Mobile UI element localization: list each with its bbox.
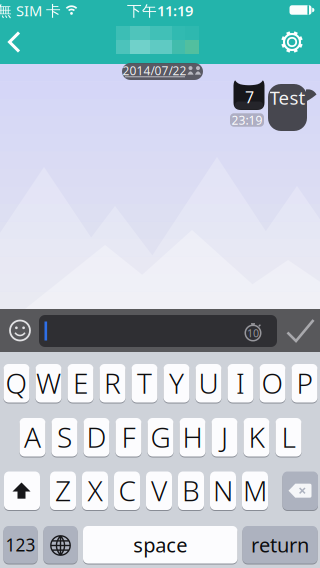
button[interactable]: K	[0, 0, 320, 568]
button[interactable]: O	[0, 0, 320, 568]
button[interactable]: B	[0, 0, 320, 568]
button[interactable]: I	[0, 0, 320, 568]
button[interactable]	[0, 0, 320, 568]
button[interactable]: Z	[0, 0, 320, 568]
staticText: W	[36, 364, 61, 402]
button[interactable]: Q	[0, 0, 320, 568]
button[interactable]: S	[0, 0, 320, 568]
button[interactable]: E	[0, 0, 320, 568]
staticText: O	[261, 364, 283, 402]
staticText: 2014/07/22	[122, 62, 186, 78]
button[interactable]: J	[0, 0, 320, 568]
staticText: Y	[169, 364, 184, 402]
button[interactable]: G	[0, 0, 320, 568]
staticText: Z	[55, 472, 71, 509]
button[interactable]: P	[0, 0, 320, 568]
staticText: R	[104, 364, 121, 402]
button[interactable]: W	[0, 0, 320, 568]
button[interactable]: C	[0, 0, 320, 568]
button[interactable]: A	[0, 0, 320, 568]
staticText: X	[87, 472, 102, 509]
staticText: I	[236, 364, 245, 402]
staticText: H	[182, 418, 202, 456]
staticText: L	[281, 418, 295, 456]
staticText: 23:19	[231, 112, 262, 128]
button[interactable]: 123	[0, 0, 320, 568]
staticText: A	[24, 418, 41, 456]
button[interactable]: return	[0, 0, 320, 568]
button[interactable]	[0, 0, 320, 568]
staticText: 無 SIM 卡	[0, 1, 61, 20]
button[interactable]	[279, 29, 305, 55]
button[interactable]: H	[0, 0, 320, 568]
staticText: N	[213, 472, 233, 509]
staticText: D	[86, 418, 106, 456]
button[interactable]: T	[0, 0, 320, 568]
button[interactable]	[0, 0, 320, 568]
staticText: E	[73, 364, 88, 402]
staticText: F	[121, 418, 135, 456]
button[interactable]: U	[0, 0, 320, 568]
button[interactable]: N	[0, 0, 320, 568]
staticText: U	[198, 364, 218, 402]
staticText: return	[251, 531, 309, 558]
staticText: K	[248, 418, 264, 456]
staticText: G	[150, 418, 170, 456]
staticText: 10	[247, 326, 259, 340]
button[interactable]: Test	[268, 84, 307, 131]
staticText: P	[296, 364, 312, 402]
staticText: Q	[5, 364, 27, 402]
staticText: 下午11:19	[127, 1, 193, 20]
button[interactable]	[6, 316, 34, 344]
button[interactable]: L	[0, 0, 320, 568]
button[interactable]: R	[0, 0, 320, 568]
button[interactable]: D	[0, 0, 320, 568]
staticText: S	[57, 418, 72, 456]
staticText: J	[221, 418, 228, 456]
staticText: T	[137, 364, 152, 402]
button[interactable]: Y	[0, 0, 320, 568]
button[interactable]: 10	[39, 315, 277, 347]
staticText: 7	[245, 86, 254, 108]
button[interactable]: X	[0, 0, 320, 568]
button[interactable]: V	[0, 0, 320, 568]
button[interactable]: space	[0, 0, 320, 568]
staticText: B	[182, 472, 200, 509]
staticText: 123	[5, 533, 35, 556]
staticText: Test	[269, 85, 305, 110]
button[interactable]	[286, 318, 315, 342]
button[interactable]: M	[0, 0, 320, 568]
button[interactable]	[7, 31, 29, 53]
staticText: M	[243, 472, 267, 509]
staticText: V	[151, 472, 167, 509]
staticText: space	[133, 531, 187, 558]
button[interactable]: F	[0, 0, 320, 568]
staticText: C	[118, 472, 135, 509]
